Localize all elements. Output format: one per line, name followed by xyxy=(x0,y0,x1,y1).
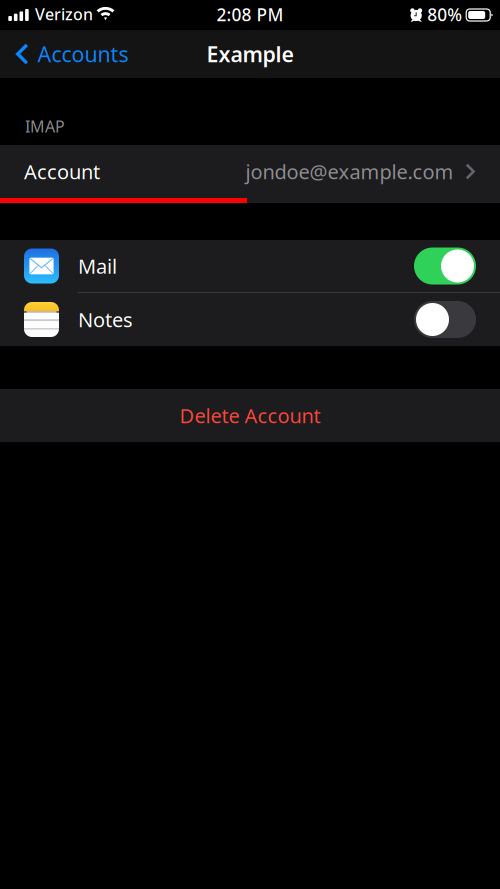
button[interactable]: Accounts xyxy=(0,30,138,78)
staticText: jondoe@example.com xyxy=(246,158,454,185)
button[interactable]: Disabled xyxy=(414,301,476,338)
button[interactable]: Enabled xyxy=(414,247,476,284)
staticText: Notes xyxy=(78,306,133,333)
button[interactable]: Mail xyxy=(0,240,500,292)
staticText: Accounts xyxy=(37,40,128,68)
button[interactable]: Notes xyxy=(0,293,500,346)
staticText: Delete Account xyxy=(179,402,320,429)
button[interactable]: Account xyxy=(0,145,500,198)
button[interactable]: Delete Account xyxy=(0,389,500,442)
staticText: Mail xyxy=(78,253,117,279)
staticText: Verizon xyxy=(35,3,93,25)
staticText: Example xyxy=(206,40,293,68)
staticText: IMAP xyxy=(25,116,65,137)
staticText: 2:08 PM xyxy=(216,3,283,26)
staticText: 80% xyxy=(427,3,462,26)
staticText: Account xyxy=(24,158,100,185)
